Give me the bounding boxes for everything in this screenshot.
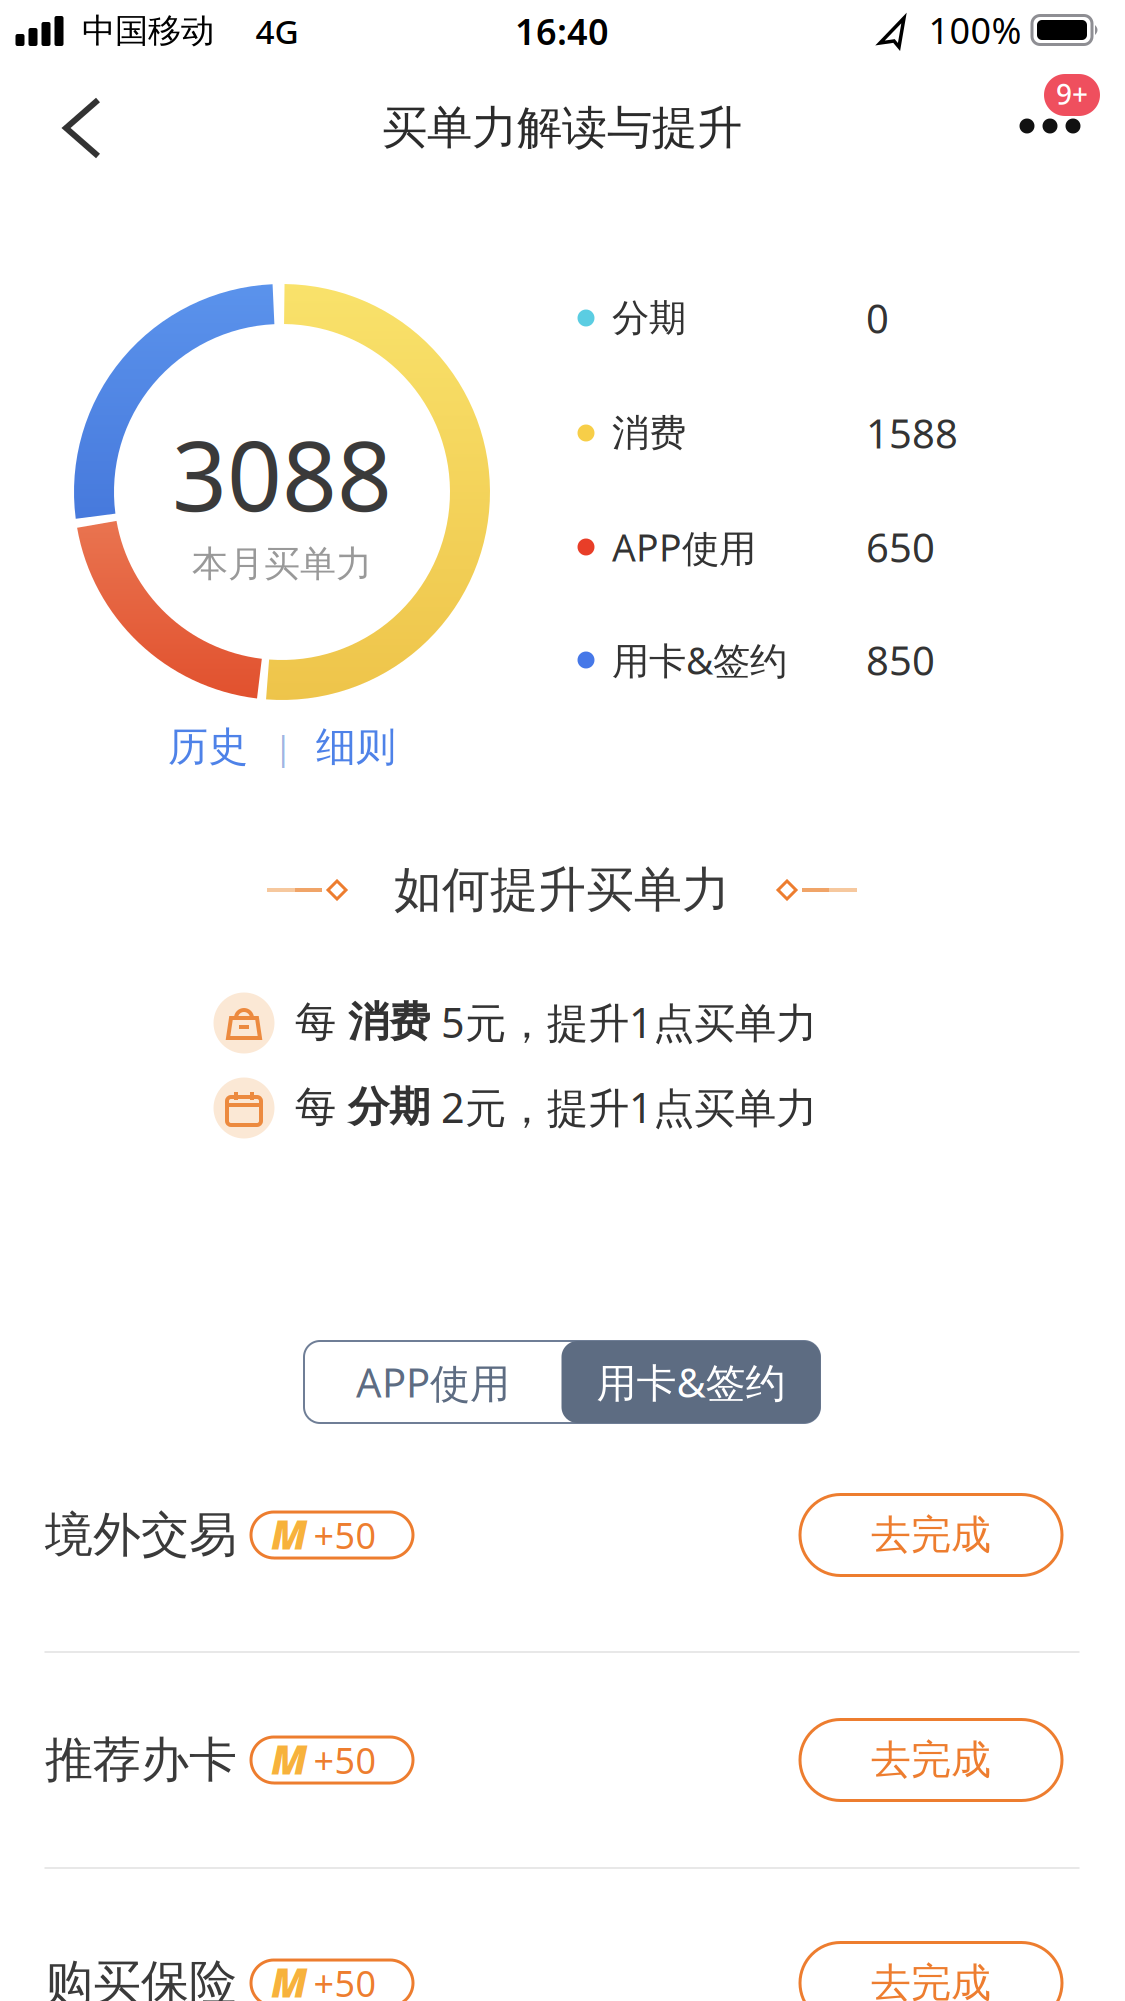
staticText: 去完成 <box>871 1958 991 2001</box>
staticText: 5元，提升1点买单力 <box>430 995 817 1049</box>
staticText: 去完成 <box>871 1510 991 1559</box>
staticText: +50 <box>313 1959 376 2001</box>
staticText: 用卡&签约 <box>596 1355 785 1408</box>
button[interactable]: APP使用 <box>313 1342 553 1422</box>
staticText: 3088 <box>172 410 392 538</box>
staticText: 0 <box>866 291 889 344</box>
button[interactable]: 去完成 <box>800 1942 1062 2001</box>
staticText: 消费 <box>348 997 430 1047</box>
staticText: M <box>271 1732 307 1785</box>
staticText: 本月买单力 <box>192 542 372 586</box>
staticText: 历史 <box>168 722 248 771</box>
staticText: 16:40 <box>515 7 609 55</box>
staticText: 650 <box>866 520 935 573</box>
button[interactable]: 历史 <box>168 722 248 771</box>
staticText: M <box>271 1507 307 1560</box>
staticText: 100% <box>928 6 1021 54</box>
button[interactable]: 去完成 <box>800 1494 1062 1575</box>
staticText: | <box>274 725 292 769</box>
staticText: 推荐办卡 <box>45 1730 237 1789</box>
staticText: 买单力解读与提升 <box>382 100 742 156</box>
staticText: 境外交易 <box>45 1505 237 1564</box>
staticText: 850 <box>866 633 935 686</box>
staticText: APP使用 <box>356 1355 510 1409</box>
button[interactable]: 用卡&签约 <box>561 1341 820 1423</box>
staticText: APP使用 <box>612 522 756 572</box>
button[interactable]: 去完成 <box>800 1719 1062 1800</box>
staticText: 分期 <box>612 295 686 341</box>
staticText: 9+ <box>1056 75 1088 113</box>
staticText: 用卡&签约 <box>612 635 787 685</box>
staticText: 中国移动 <box>82 10 214 51</box>
staticText: M <box>271 1955 307 2001</box>
staticText: 去完成 <box>871 1735 991 1784</box>
staticText: 4G <box>255 9 298 53</box>
staticText: 每 <box>295 1082 348 1132</box>
staticText: 如何提升买单力 <box>394 860 730 919</box>
staticText: 每 <box>295 997 348 1047</box>
staticText: 购买保险 <box>45 1953 237 2001</box>
button[interactable]: Back <box>40 83 124 173</box>
staticText: 2元，提升1点买单力 <box>430 1080 817 1134</box>
staticText: 1588 <box>866 406 958 459</box>
staticText: +50 <box>313 1736 376 1784</box>
staticText: 消费 <box>612 410 686 456</box>
button[interactable]: 细则 <box>316 722 396 771</box>
staticText: +50 <box>313 1511 376 1559</box>
staticText: 细则 <box>316 722 396 771</box>
staticText: 分期 <box>348 1082 430 1132</box>
button[interactable]: More <box>1005 59 1095 149</box>
